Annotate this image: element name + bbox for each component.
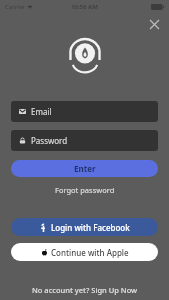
staticText: Carrier xyxy=(5,3,25,11)
button[interactable]: Password xyxy=(11,130,158,151)
button[interactable]: Login with Facebook xyxy=(11,218,158,236)
staticText: Email xyxy=(31,106,52,117)
staticText: Continue with Apple xyxy=(51,247,129,258)
staticText: Forgot password xyxy=(55,185,115,195)
staticText: Enter xyxy=(74,163,96,174)
button[interactable]: Close xyxy=(145,15,163,33)
button[interactable]: Continue with Apple xyxy=(11,243,158,261)
staticText: Login with Facebook xyxy=(51,222,130,233)
staticText: 10:56 AM xyxy=(71,3,98,11)
button[interactable]: Enter xyxy=(11,160,158,177)
staticText: Password xyxy=(31,135,68,146)
button[interactable]: Email xyxy=(11,101,158,122)
button[interactable]: Forgot password xyxy=(49,183,121,197)
staticText: No account yet? Sign Up Now xyxy=(32,285,138,295)
button[interactable]: No account yet? Sign Up Now xyxy=(26,283,144,297)
